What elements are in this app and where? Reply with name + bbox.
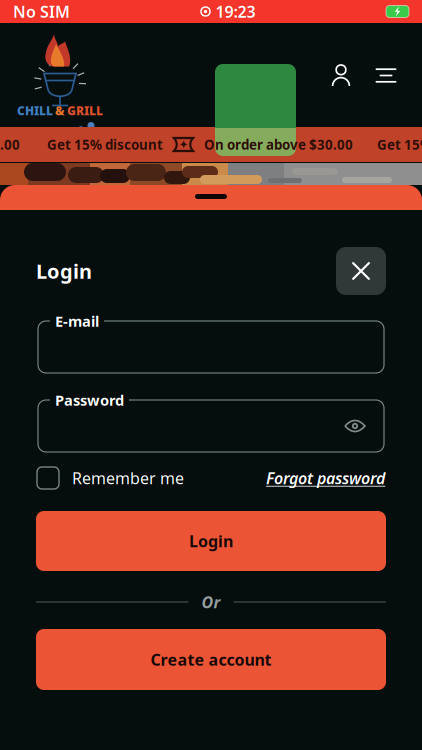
button[interactable]: Close <box>336 247 386 295</box>
staticText: Get 15% <box>377 136 422 153</box>
button[interactable]: Forgot password <box>266 467 385 489</box>
staticText: Login <box>189 530 233 552</box>
staticText: GRILL <box>67 103 103 118</box>
staticText: .00 <box>0 136 20 153</box>
button[interactable]: Menu <box>368 57 404 93</box>
staticText: Or <box>201 591 220 613</box>
staticText: Forgot password <box>266 467 385 489</box>
staticText: No SIM <box>13 1 70 22</box>
button[interactable]: Login <box>0 511 422 571</box>
staticText: Password <box>55 390 124 410</box>
staticText: Login <box>36 258 92 284</box>
staticText: CHILL <box>17 103 53 118</box>
staticText: Remember me <box>72 467 184 489</box>
staticText: ✦ <box>178 138 188 151</box>
staticText: Get 15% discount <box>47 136 163 153</box>
button[interactable]: Account <box>323 57 359 93</box>
staticText: Create account <box>150 649 271 670</box>
staticText: E-mail <box>55 311 99 331</box>
staticText: On order above $30.00 <box>204 136 353 153</box>
button[interactable]: Remember me <box>37 467 184 489</box>
button[interactable]: Create account <box>0 629 422 690</box>
staticText: 19:23 <box>215 1 255 22</box>
staticText: & <box>55 103 65 118</box>
